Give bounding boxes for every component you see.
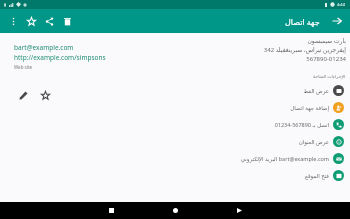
button[interactable]: Home [163, 202, 187, 219]
button[interactable]: Add to favorites [36, 86, 54, 104]
button[interactable]: إضافة جهة اتصال [222, 99, 346, 116]
staticText: http://example.com/simpsons [14, 53, 106, 62]
button[interactable]: More options [4, 12, 22, 30]
staticText: اتصل بـ 567890-01234 [274, 121, 329, 128]
button[interactable]: Share [40, 12, 58, 30]
button[interactable]: Edit [14, 86, 32, 104]
button[interactable]: اتصل بـ 567890-01234 [222, 116, 346, 133]
button[interactable]: البريد الإلكتروني bart@example.com [222, 150, 346, 167]
staticText: البريد الإلكتروني bart@example.com [240, 155, 329, 162]
button[interactable]: فتح الموقع [222, 167, 346, 184]
staticText: الإجراءات المتاحة [313, 73, 346, 79]
staticText: bart@example.com [14, 43, 74, 52]
button[interactable]: http://example.com/simpsons [14, 53, 106, 62]
button[interactable]: Back [328, 12, 346, 30]
staticText: 4:44 [337, 2, 345, 7]
button[interactable]: Favorite [22, 12, 40, 30]
button[interactable]: Recent apps [99, 202, 123, 219]
staticText: عرض القط [303, 87, 329, 94]
staticText: بارت سيمبسون [307, 37, 346, 45]
staticText: إضافة جهة اتصال [290, 104, 329, 111]
staticText: جهة اتصال [285, 16, 320, 27]
staticText: فتح الموقع [304, 172, 329, 179]
button[interactable]: Delete [58, 12, 76, 30]
staticText: 342 إيفرجرين تيراس، سبرينغفيلد [263, 46, 346, 54]
button[interactable]: عرض العنوان [222, 133, 346, 150]
staticText: عرض العنوان [298, 138, 329, 145]
staticText: Web site [14, 64, 33, 70]
button[interactable]: عرض القط [222, 82, 346, 99]
button[interactable]: bart@example.com [14, 43, 74, 52]
button[interactable]: Back [227, 202, 251, 219]
staticText: 567890-01234 [306, 55, 346, 63]
